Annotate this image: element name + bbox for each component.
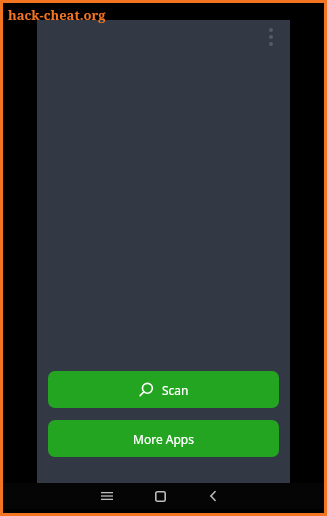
- button[interactable]: Back: [200, 483, 226, 509]
- button[interactable]: More options: [257, 23, 285, 51]
- staticText: More Apps: [133, 431, 194, 447]
- button[interactable]: Recent apps: [94, 483, 120, 509]
- staticText: hack-cheat.org: [8, 6, 106, 24]
- button[interactable]: Home: [147, 483, 173, 509]
- staticText: Scan: [162, 382, 189, 398]
- button[interactable]: More Apps: [48, 420, 279, 457]
- button[interactable]: Scan: [48, 371, 279, 408]
